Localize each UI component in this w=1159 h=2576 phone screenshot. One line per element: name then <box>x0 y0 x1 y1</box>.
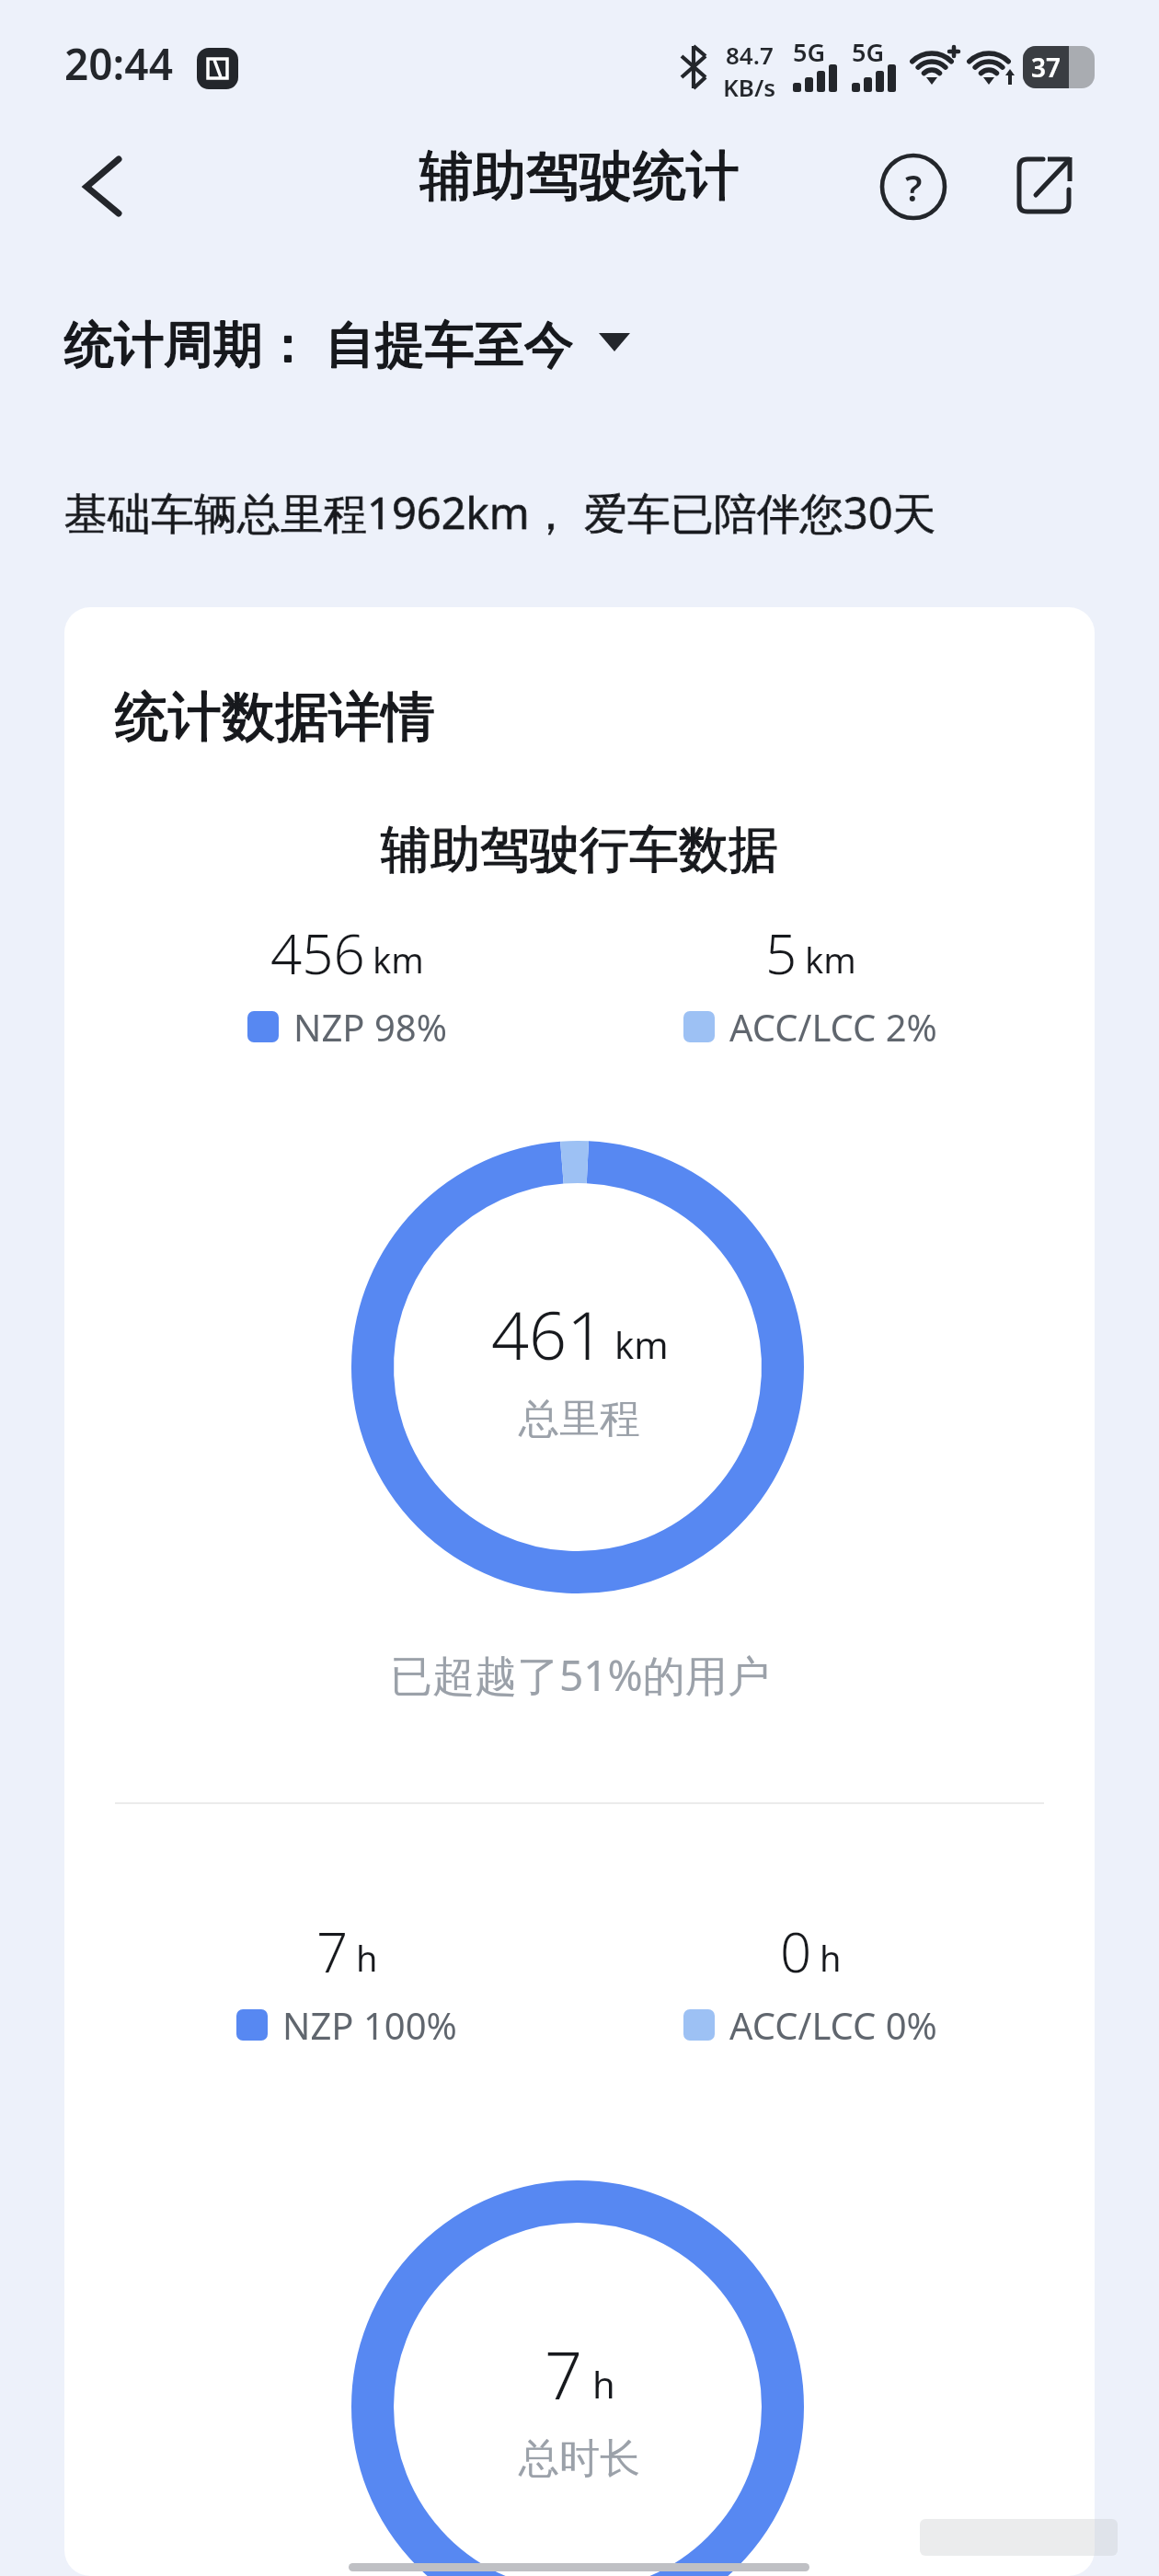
staticText: 辅助驾驶统计 <box>419 143 740 210</box>
staticText: 7 <box>545 2329 583 2419</box>
staticText: 基础车辆总里程1962km， 爱车已陪伴您30天 <box>64 483 936 542</box>
staticText: 5G <box>793 35 826 69</box>
button[interactable] <box>55 147 147 230</box>
staticText: ACC/LCC 0% <box>729 2000 937 2050</box>
staticText: h <box>820 1934 842 1982</box>
staticText: km <box>805 936 856 983</box>
staticText: 统计周期： 自提车至今 <box>64 308 575 376</box>
staticText: 461 <box>491 1289 605 1379</box>
staticText: NZP 100% <box>282 2000 457 2050</box>
staticText: 统计周期： 自提车至今 <box>64 308 575 376</box>
staticText: 456 <box>270 915 365 991</box>
staticText: 7 <box>316 1914 349 1989</box>
button[interactable] <box>1012 153 1080 221</box>
staticText: 辅助驾驶行车数据 <box>381 819 778 881</box>
staticText: KB/s <box>723 71 776 103</box>
staticText: 总里程 <box>519 1394 640 1444</box>
staticText: 84.7 <box>726 39 774 71</box>
staticText: 统计数据详情 <box>115 684 435 751</box>
staticText: 20:44 <box>64 35 173 93</box>
staticText: 5 <box>765 915 798 991</box>
staticText: km <box>614 1319 669 1369</box>
staticText: 基础车辆总里程1962km， 爱车已陪伴您30天 <box>64 483 936 542</box>
staticText: 0 <box>780 1914 812 1989</box>
staticText: h <box>356 1934 378 1982</box>
staticText: 37 <box>1031 50 1061 85</box>
staticText: 总时长 <box>519 2433 640 2484</box>
staticText: NZP 98% <box>293 1002 447 1052</box>
staticText: 统计数据详情 <box>115 684 435 751</box>
staticText: h <box>592 2359 615 2409</box>
staticText: 辅助驾驶统计 <box>419 143 740 210</box>
staticText: km <box>373 936 424 983</box>
staticText: 辅助驾驶行车数据 <box>381 819 778 881</box>
staticText: ACC/LCC 2% <box>729 1002 937 1052</box>
button[interactable]: ? <box>879 153 947 221</box>
staticText: 5G <box>852 35 885 69</box>
button[interactable]: 统计周期： 自提车至今 <box>64 308 630 376</box>
staticText: ? <box>905 162 923 212</box>
staticText: 已超越了51%的用户 <box>390 1646 770 1704</box>
